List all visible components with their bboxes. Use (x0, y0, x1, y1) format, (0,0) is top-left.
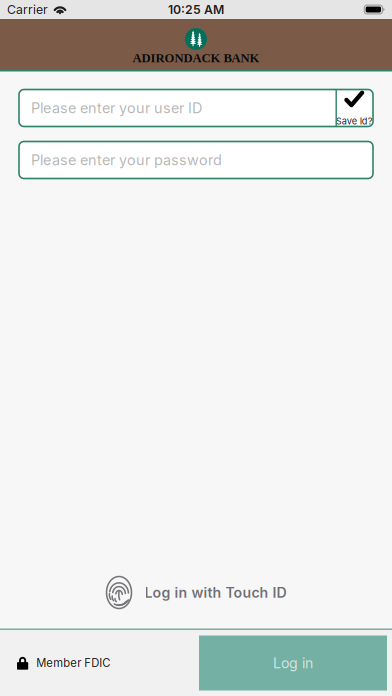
button[interactable]: Save Id (335, 89, 373, 126)
staticText: Please enter your password (31, 151, 222, 169)
staticText: ADIRONDACK BANK (132, 51, 259, 65)
staticText: Log in with Touch ID (144, 584, 286, 601)
staticText: Please enter your user ID (31, 99, 202, 117)
button[interactable]: Log in with Touch ID (97, 569, 294, 615)
staticText: Log in (273, 654, 313, 671)
staticText: 10:25 AM (168, 2, 224, 17)
staticText: Carrier (7, 2, 48, 17)
staticText: Member FDIC (36, 656, 110, 670)
staticText: Save Id? (336, 115, 373, 127)
button[interactable]: Log in (199, 635, 387, 690)
